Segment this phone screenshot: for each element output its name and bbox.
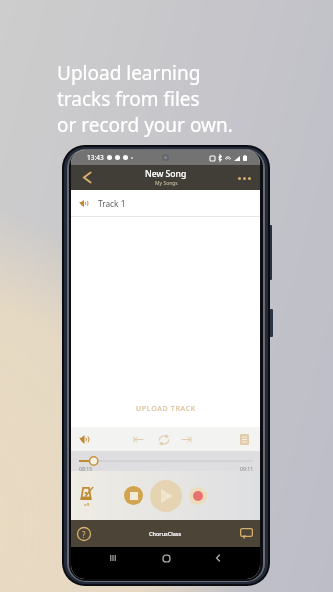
- staticText: ChorusClass: [149, 530, 182, 537]
- button[interactable]: Lyrics: [232, 427, 256, 451]
- button[interactable]: Track 1: [71, 190, 260, 216]
- staticText: Track 1: [98, 198, 126, 209]
- button[interactable]: Play: [150, 480, 182, 512]
- button[interactable]: Help: [76, 526, 92, 542]
- staticText: My Songs: [155, 180, 178, 187]
- staticText: 13:43: [87, 153, 104, 162]
- staticText: off: [84, 502, 90, 507]
- button[interactable]: More options: [235, 168, 253, 188]
- staticText: Upload learning: [57, 60, 201, 86]
- button[interactable]: Chat: [240, 527, 253, 540]
- button[interactable]: Home: [155, 547, 177, 569]
- button[interactable]: Volume: [72, 427, 96, 451]
- staticText: New Song: [145, 168, 187, 180]
- button[interactable]: Skip to start: [127, 428, 150, 451]
- button[interactable]: Skip to end: [175, 428, 198, 451]
- button[interactable]: Seek: [71, 451, 260, 471]
- button[interactable]: Record: [189, 487, 207, 505]
- staticText: or record your own.: [57, 112, 233, 138]
- staticText: 09:11: [240, 465, 254, 472]
- staticText: tracks from files: [57, 86, 200, 112]
- button[interactable]: Back: [77, 165, 97, 190]
- button[interactable]: Stop: [124, 486, 143, 505]
- button[interactable]: Metronome: [79, 485, 95, 507]
- button[interactable]: Recents: [102, 547, 124, 569]
- button[interactable]: UPLOAD TRACK: [136, 404, 196, 414]
- staticText: 08:15: [79, 465, 93, 472]
- button[interactable]: Loop: [152, 428, 175, 451]
- staticText: ?: [82, 529, 86, 540]
- button[interactable]: Back: [207, 547, 229, 569]
